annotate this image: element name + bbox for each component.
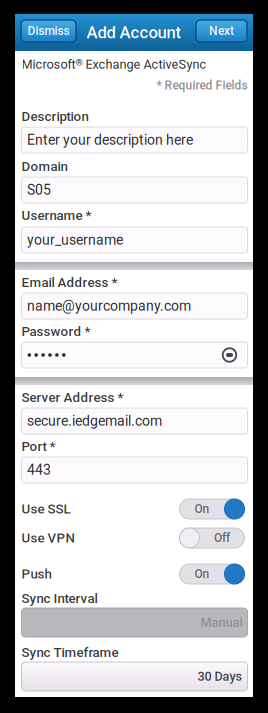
staticText: Port * [21, 439, 55, 454]
button[interactable]: Manual [21, 608, 247, 637]
staticText: Manual [200, 615, 242, 630]
staticText: your_username [27, 232, 123, 248]
staticText: Sync Timeframe [21, 645, 118, 660]
staticText: Domain [21, 159, 67, 174]
button[interactable]: Use VPN [21, 528, 247, 548]
staticText: Push [21, 566, 51, 582]
staticText: Email Address * [21, 275, 117, 290]
staticText: Password * [21, 324, 90, 339]
staticText: Sync Interval [21, 591, 97, 606]
staticText: * Required Fields [156, 78, 247, 93]
staticText: Description [21, 109, 88, 124]
staticText: Dismiss [27, 24, 69, 38]
button[interactable]: Use SSL [21, 499, 247, 519]
staticText: On [194, 567, 209, 581]
button[interactable]: 30 Days [21, 662, 247, 691]
staticText: Use VPN [21, 530, 74, 546]
button[interactable]: Next [196, 20, 247, 42]
staticText: Enter your description here [27, 132, 193, 148]
button[interactable]: Show password [221, 347, 237, 363]
staticText: Microsoft® Exchange ActiveSync [21, 57, 206, 72]
staticText: Server Address * [21, 390, 123, 405]
staticText: Off [214, 531, 230, 545]
staticText: On [194, 502, 209, 516]
button[interactable]: Push [21, 564, 247, 584]
staticText: Next [209, 24, 234, 38]
staticText: 443 [27, 462, 51, 478]
staticText: Use SSL [21, 501, 70, 517]
staticText: S05 [27, 182, 51, 198]
staticText: 30 Days [197, 669, 242, 684]
staticText: Add Account [86, 23, 181, 42]
staticText: secure.iedgemail.com [27, 413, 162, 429]
staticText: Username * [21, 208, 91, 223]
button[interactable]: Dismiss [21, 20, 76, 42]
staticText: name@yourcompany.com [27, 298, 191, 314]
